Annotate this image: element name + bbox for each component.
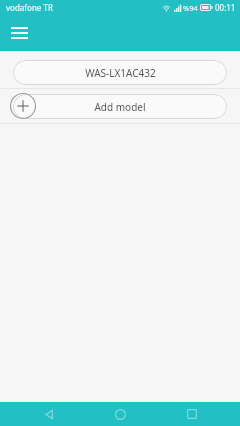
button[interactable]: Open navigation menu [4,18,34,48]
button[interactable]: Home [97,402,143,426]
button[interactable]: WAS-LX1AC432 [0,57,240,88]
button[interactable]: Back [26,402,72,426]
staticText: WAS-LX1AC432 [85,66,156,80]
button[interactable]: Recent apps [169,402,215,426]
staticText: %94 [183,3,198,13]
staticText: Add model [94,100,146,114]
staticText: vodafone TR [6,2,53,13]
button[interactable]: Add model [0,89,240,123]
staticText: 00:11 [215,2,236,13]
